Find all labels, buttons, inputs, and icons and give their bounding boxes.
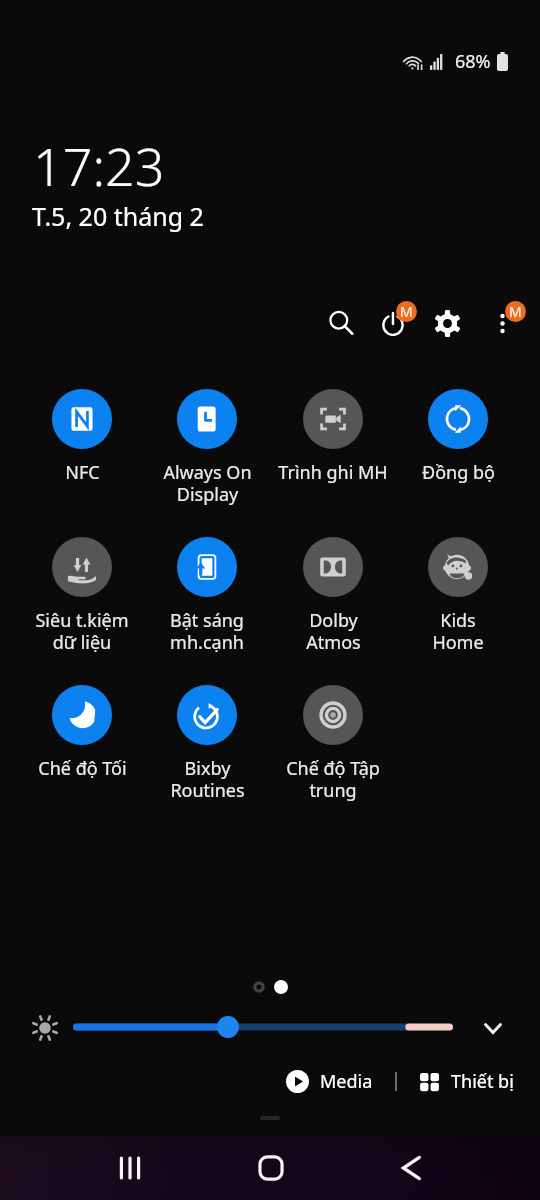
button[interactable]: Home xyxy=(239,1136,303,1200)
staticText: Chế độ Tập trung xyxy=(286,756,380,802)
button[interactable]: Chế độ Tập trung xyxy=(272,685,394,802)
button[interactable]: Siêu t.kiệm dữ liệu xyxy=(21,537,143,654)
staticText: Chế độ Tối xyxy=(38,756,127,781)
staticText: Media xyxy=(320,1069,373,1094)
staticText: Bật sáng mh.cạnh xyxy=(170,608,244,654)
staticText: Bixby Routines xyxy=(170,756,245,802)
staticText: T.5, 20 tháng 2 xyxy=(32,199,204,233)
button[interactable]: Recents xyxy=(98,1136,162,1200)
button[interactable]: Media xyxy=(286,1063,373,1100)
staticText: 17:23 xyxy=(33,130,165,201)
button[interactable]: Bật sáng mh.cạnh xyxy=(146,537,268,654)
button[interactable]: Back xyxy=(379,1136,443,1200)
button[interactable]: Expand xyxy=(476,1012,510,1044)
button[interactable]: Kids Home xyxy=(397,537,519,654)
staticText: 68% xyxy=(455,49,491,74)
button[interactable]: Thiết bị xyxy=(419,1063,514,1100)
button[interactable]: Power off xyxy=(369,299,417,347)
staticText: Always On Display xyxy=(163,460,252,506)
staticText: Thiết bị xyxy=(451,1069,514,1094)
button[interactable]: Trình ghi MH xyxy=(272,389,394,485)
staticText: M xyxy=(400,302,413,321)
button[interactable]: Search xyxy=(317,299,365,347)
button[interactable]: Dolby Atmos xyxy=(272,537,394,654)
staticText: M xyxy=(509,302,522,321)
staticText: NFC xyxy=(65,460,100,485)
staticText: Đồng bộ xyxy=(422,460,495,485)
button[interactable]: Bixby Routines xyxy=(146,685,268,802)
button[interactable]: Chế độ Tối xyxy=(21,685,143,781)
button[interactable]: Always On Display xyxy=(146,389,268,506)
button[interactable]: NFC xyxy=(21,389,143,485)
staticText: Dolby Atmos xyxy=(306,608,361,654)
button[interactable]: Đồng bộ xyxy=(397,389,519,485)
staticText: Kids Home xyxy=(432,608,484,654)
staticText: Siêu t.kiệm dữ liệu xyxy=(35,608,129,654)
button[interactable]: More options xyxy=(478,299,526,347)
staticText: Trình ghi MH xyxy=(278,460,388,485)
button[interactable]: Settings xyxy=(423,299,471,347)
